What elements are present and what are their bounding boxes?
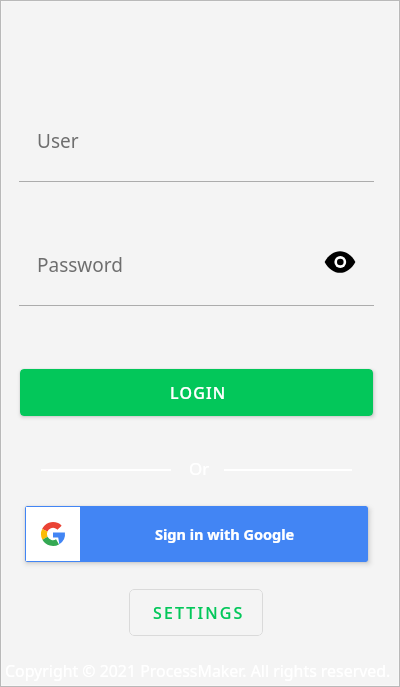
button[interactable]: LOGIN — [20, 369, 373, 416]
staticText: Or — [189, 457, 210, 480]
staticText: User — [37, 128, 79, 154]
button[interactable]: SETTINGS — [129, 589, 263, 636]
staticText: Copyright © 2021 ProcessMaker. All right… — [5, 660, 391, 682]
staticText: Password — [37, 252, 123, 278]
staticText: Sign in with Google — [155, 524, 295, 544]
button[interactable]: Sign in with Google — [25, 506, 368, 562]
staticText: LOGIN — [170, 382, 227, 404]
button[interactable]: Show password — [324, 246, 356, 278]
staticText: SETTINGS — [153, 602, 245, 624]
